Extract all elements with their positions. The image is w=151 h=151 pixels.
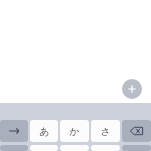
button[interactable]: あ	[30, 120, 58, 142]
staticText: あ	[39, 125, 50, 138]
button[interactable]	[0, 145, 28, 151]
button[interactable]: さ	[91, 120, 120, 142]
staticText: か	[69, 125, 80, 138]
button[interactable]: Next character	[0, 120, 28, 142]
button[interactable]	[122, 145, 151, 151]
button[interactable]: Backspace	[122, 120, 151, 142]
staticText: さ	[100, 125, 111, 138]
button[interactable]: Add	[122, 79, 142, 99]
button[interactable]	[91, 145, 120, 151]
button[interactable]	[60, 145, 89, 151]
button[interactable]	[30, 145, 58, 151]
button[interactable]: か	[60, 120, 89, 142]
